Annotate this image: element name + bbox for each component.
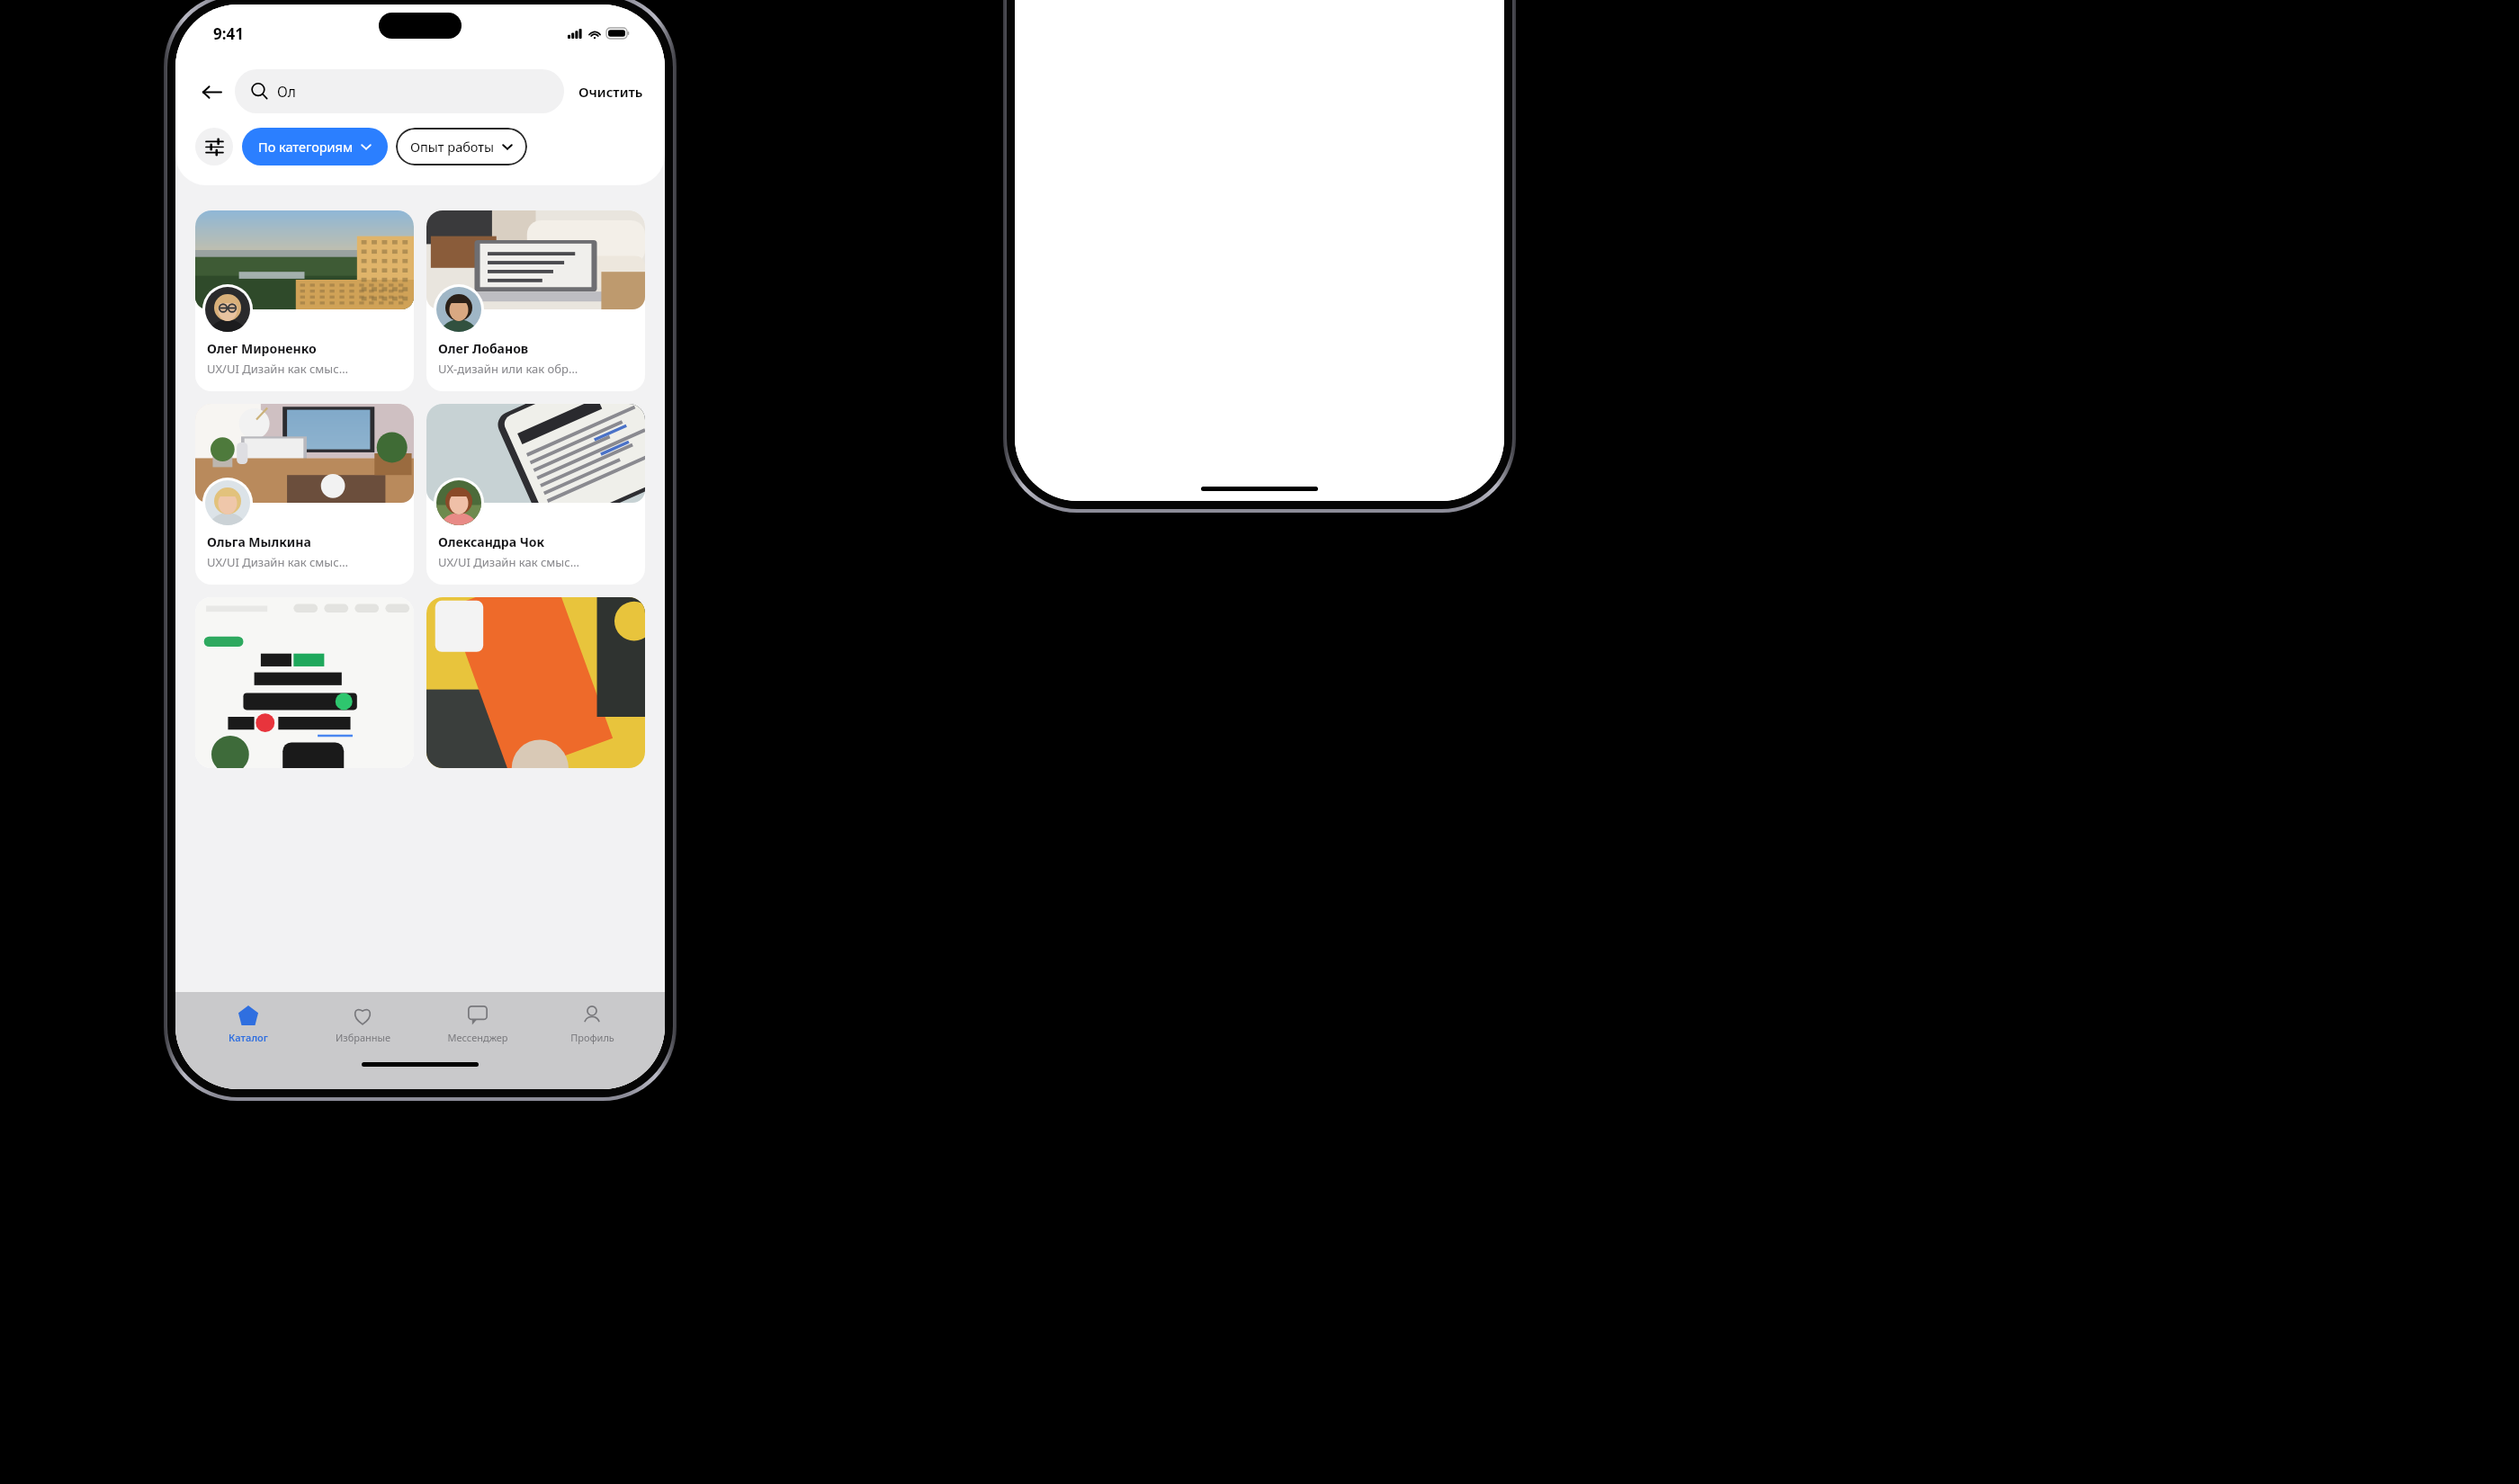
button[interactable]: Ольга Мылкина <box>195 404 414 585</box>
button[interactable]: Назад <box>193 74 229 110</box>
staticText: UX/UI Дизайн как смыс… <box>207 554 348 570</box>
staticText: 9:41 <box>213 23 244 44</box>
button[interactable]: Очистить <box>575 77 647 106</box>
staticText: Профиль <box>570 1031 614 1044</box>
staticText: UX/UI Дизайн как смыс… <box>207 361 348 377</box>
button[interactable]: Опыт работы <box>396 128 527 165</box>
button[interactable]: По категориям <box>242 128 388 165</box>
staticText: Олександра Чок <box>438 533 545 550</box>
button[interactable]: Ол <box>235 69 564 113</box>
staticText: Очистить <box>578 83 643 101</box>
button[interactable]: Олег Мироненко <box>195 210 414 391</box>
staticText: Олег Мироненко <box>207 340 317 357</box>
button[interactable]: Каталог <box>207 1001 290 1048</box>
staticText: Ольга Мылкина <box>207 533 311 550</box>
staticText: По категориям <box>258 138 354 156</box>
staticText: Олег Лобанов <box>438 340 529 357</box>
staticText: Опыт работы <box>410 138 495 156</box>
button[interactable]: Мессенджер <box>436 1001 519 1048</box>
staticText: Каталог <box>229 1031 268 1044</box>
staticText: UX/UI Дизайн как смыс… <box>438 554 579 570</box>
staticText: Ол <box>277 82 296 101</box>
staticText: Мессенджер <box>447 1031 508 1044</box>
staticText: Избранные <box>336 1031 390 1044</box>
button[interactable]: Олександра Чок <box>426 404 645 585</box>
button[interactable]: Профиль <box>551 1001 633 1048</box>
staticText: UX-дизайн или как обр… <box>438 361 578 377</box>
button[interactable]: Фильтры <box>195 128 233 165</box>
button[interactable]: Избранные <box>321 1001 404 1048</box>
button[interactable]: Олег Лобанов <box>426 210 645 391</box>
